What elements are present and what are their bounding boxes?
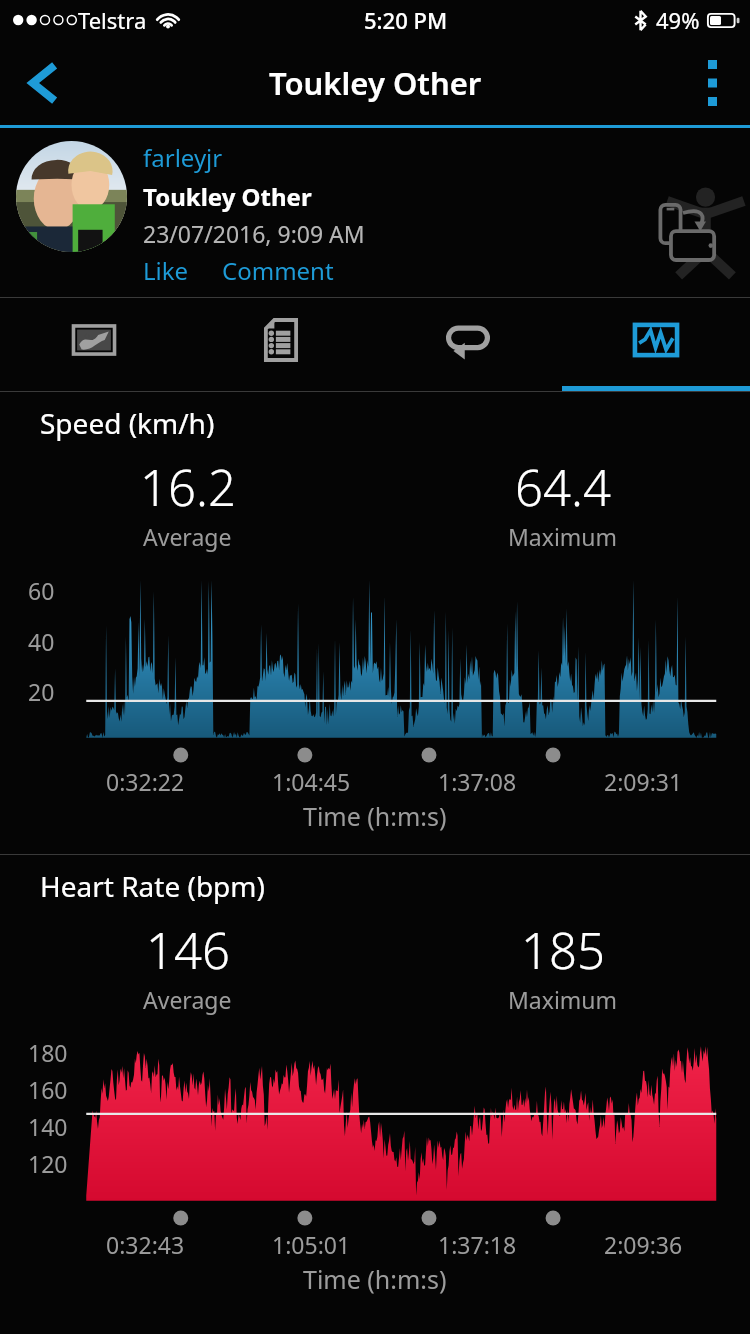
staticText: 140 (28, 1111, 68, 1142)
button[interactable]: Back (0, 40, 88, 125)
staticText: 64.4 (515, 454, 611, 521)
staticText: Heart Rate (bpm) (40, 867, 265, 905)
staticText: 49% (656, 5, 700, 35)
staticText: 0:32:22 (106, 766, 185, 796)
staticText: 20 (28, 676, 55, 707)
button[interactable]: More options (674, 40, 750, 125)
staticText: Maximum (508, 984, 618, 1015)
button[interactable]: Sync devices (646, 176, 742, 272)
staticText: 2:09:31 (604, 766, 683, 796)
staticText: 5:20 PM (364, 5, 448, 35)
staticText: 40 (28, 626, 55, 657)
staticText: Average (143, 521, 232, 552)
button[interactable]: Laps (374, 298, 562, 391)
staticText: 23/07/2016, 9:09 AM (143, 218, 365, 249)
staticText: Maximum (508, 521, 618, 552)
staticText: Toukley Other (269, 62, 482, 104)
staticText: Comment (222, 254, 334, 287)
staticText: 180 (28, 1037, 68, 1068)
staticText: 0:32:43 (106, 1229, 185, 1259)
staticText: Time (h:m:s) (303, 1262, 447, 1296)
staticText: 1:04:45 (272, 766, 351, 796)
staticText: 1:37:18 (438, 1229, 517, 1259)
staticText: Speed (km/h) (40, 404, 215, 442)
button[interactable]: Comment (222, 254, 334, 287)
staticText: farleyjr (143, 141, 223, 174)
staticText: 60 (28, 575, 55, 606)
staticText: 2:09:36 (604, 1229, 683, 1259)
staticText: 1:05:01 (272, 1229, 351, 1259)
button[interactable]: Map (0, 298, 187, 391)
button[interactable]: Like (143, 254, 189, 287)
button[interactable]: Details (187, 298, 374, 391)
button[interactable]: Profile photo (16, 141, 127, 252)
staticText: 1:37:08 (438, 766, 517, 796)
staticText: 120 (28, 1148, 68, 1179)
staticText: 16.2 (140, 454, 236, 521)
staticText: Toukley Other (143, 180, 312, 213)
staticText: 146 (146, 917, 230, 984)
staticText: Time (h:m:s) (303, 799, 447, 833)
staticText: Like (143, 254, 189, 287)
staticText: 185 (521, 917, 605, 984)
staticText: Telstra (78, 5, 147, 35)
button[interactable]: Charts (562, 298, 750, 391)
staticText: Average (143, 984, 232, 1015)
staticText: 160 (28, 1074, 68, 1105)
